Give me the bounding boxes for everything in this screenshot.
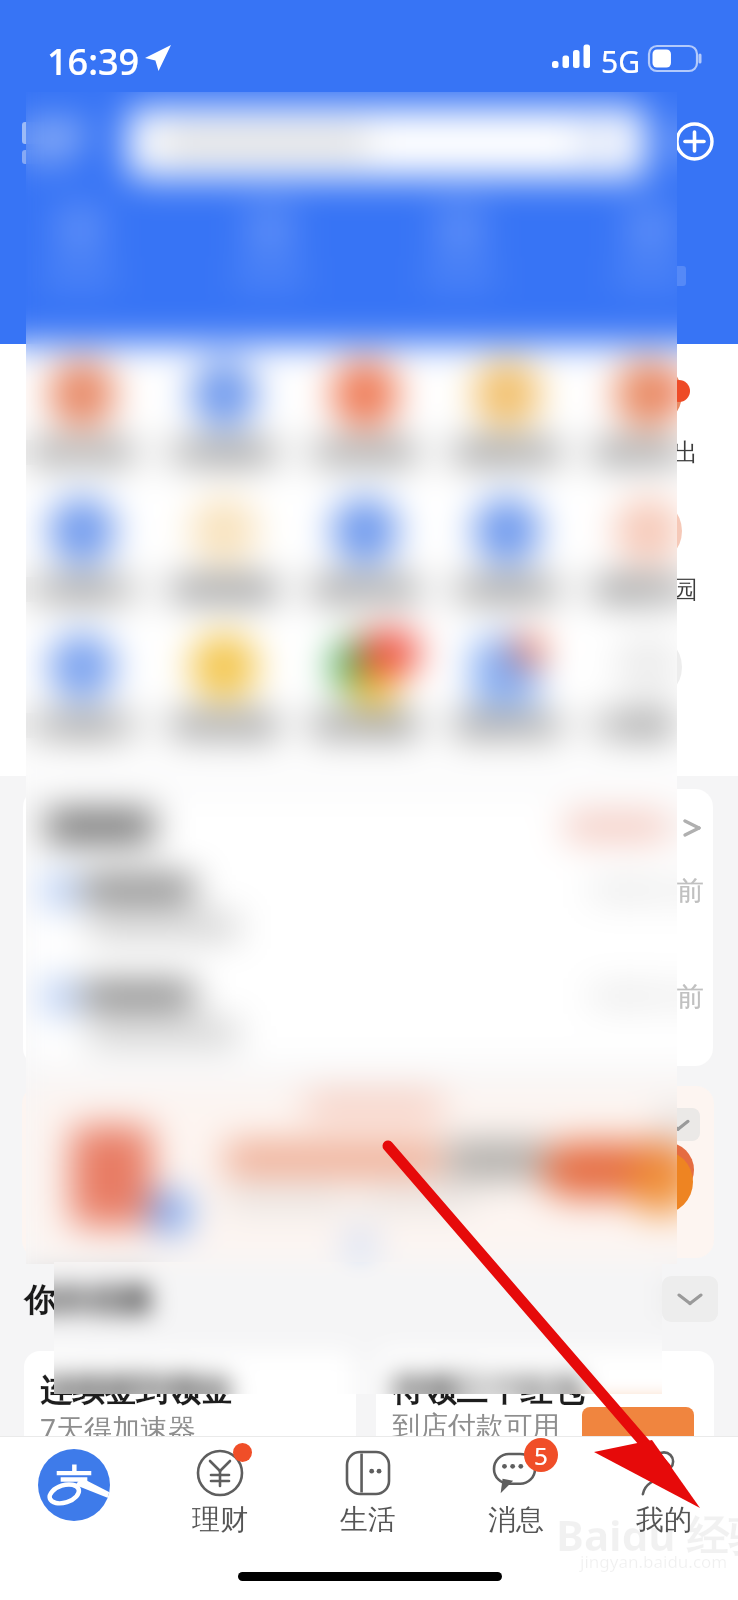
button[interactable]: 待领三个红包 [376,1351,714,1461]
button[interactable] [128,108,646,178]
button[interactable] [190,360,258,428]
staticText: 出行码 [328,437,403,468]
button[interactable] [190,497,258,565]
button[interactable] [48,633,116,701]
staticText: 连续签到领金 [40,1370,232,1410]
button[interactable] [190,360,258,428]
staticText: 扫一扫 [45,437,120,468]
button[interactable] [614,360,682,428]
button[interactable] [190,497,258,565]
button[interactable] [331,497,399,565]
button[interactable] [190,497,258,565]
button[interactable] [473,360,541,428]
button[interactable]: Add [675,122,714,161]
button[interactable] [331,633,399,701]
button[interactable] [614,497,682,565]
button[interactable] [614,360,682,428]
button[interactable] [614,633,682,701]
staticText: 信用卡还款 [305,573,425,605]
staticText: 交通出行 [457,437,557,468]
staticText: 市民中心 [457,710,557,741]
staticText: Baidu 经验 [556,1506,738,1563]
button[interactable] [48,497,116,565]
button[interactable]: 连续签到领金 [24,1351,356,1461]
button[interactable] [190,633,258,701]
button[interactable] [331,360,399,428]
button[interactable] [22,1086,714,1258]
button[interactable] [48,360,116,428]
button[interactable]: 连续签到领金 [24,1351,356,1461]
button[interactable]: 理财 [158,1436,282,1556]
button[interactable] [473,497,541,565]
button[interactable]: Add [675,122,714,161]
button[interactable] [473,633,541,701]
button[interactable] [48,497,116,565]
button[interactable] [48,360,116,428]
button[interactable] [190,633,258,701]
button[interactable] [331,497,399,565]
button[interactable]: Collapse banner [656,1108,700,1141]
staticText: 前 [677,874,704,908]
button[interactable]: 待领三个红包 [376,1351,714,1461]
button[interactable]: 前 [23,789,713,1066]
button[interactable] [48,360,116,428]
staticText: 7天得加速器 [40,1409,197,1447]
button[interactable] [331,633,399,701]
button[interactable]: Collapse banner [656,1108,700,1141]
button[interactable]: Expand [662,1276,718,1322]
button[interactable]: 前 [23,789,713,1066]
staticText: 到店付款可用 [392,1409,560,1444]
staticText: 转账 [57,574,107,605]
staticText: 交通出行 [457,437,557,468]
button[interactable] [473,360,541,428]
button[interactable] [331,497,399,565]
button[interactable]: 前 [23,789,713,1066]
button[interactable] [614,633,682,701]
button[interactable] [128,108,646,178]
button[interactable] [48,497,116,565]
staticText: 手机充值 [174,710,274,741]
staticText: 付钱码 [187,437,262,468]
button[interactable] [48,633,116,701]
button[interactable] [614,633,682,701]
staticText: 深圳通乘车 [305,709,425,741]
button[interactable] [22,1086,714,1258]
button[interactable] [190,633,258,701]
button[interactable] [473,633,541,701]
button[interactable] [614,360,682,428]
staticText: 深圳通乘车 [305,709,425,741]
button[interactable]: 连续签到领金 [24,1351,356,1461]
button[interactable] [128,108,646,178]
button[interactable] [473,633,541,701]
button[interactable] [614,497,682,565]
button[interactable]: Next [629,1150,693,1214]
button[interactable]: Alipay home [38,1449,110,1521]
button[interactable] [331,360,399,428]
staticText: 转账 [57,574,107,605]
button[interactable] [331,633,399,701]
staticText: 5G [601,41,640,82]
staticText: 理财 [192,1502,248,1537]
button[interactable] [190,360,258,428]
staticText: 转账 [57,574,107,605]
button[interactable] [473,360,541,428]
button[interactable] [48,633,116,701]
button[interactable] [473,497,541,565]
button[interactable]: 待领三个红包 [376,1351,714,1461]
staticText: 余额宝 [470,574,545,605]
button[interactable]: 我的 [602,1436,726,1556]
staticText: 市民中心 [457,710,557,741]
staticText: 手机充值 [174,710,274,741]
button[interactable]: Next [629,1150,693,1214]
button[interactable] [473,497,541,565]
button[interactable]: Collapse banner [656,1108,700,1141]
button[interactable] [22,1086,714,1258]
button[interactable]: 5 [454,1436,578,1556]
button[interactable]: Expand [662,1276,718,1322]
button[interactable] [331,360,399,428]
button[interactable]: Expand [662,1276,718,1322]
button[interactable]: Add [675,122,714,161]
button[interactable]: Next [629,1150,693,1214]
button[interactable]: 生活 [306,1436,430,1556]
button[interactable] [614,497,682,565]
